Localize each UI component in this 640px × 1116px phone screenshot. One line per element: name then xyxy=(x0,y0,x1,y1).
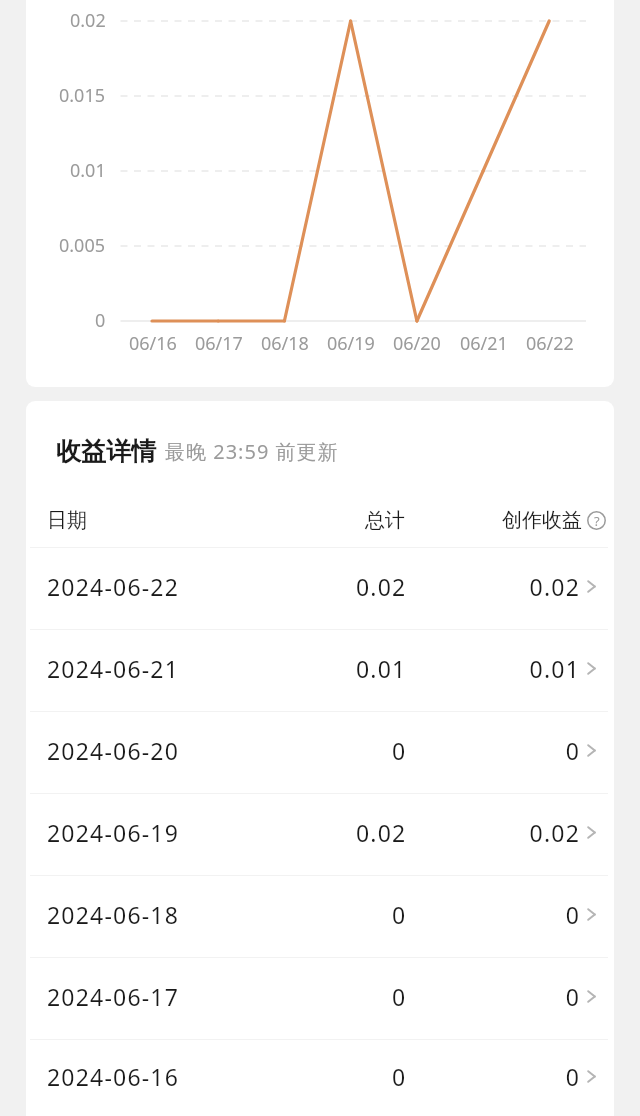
staticText: 06/18 xyxy=(261,331,309,356)
staticText: 0 xyxy=(95,308,106,333)
staticText: 0.005 xyxy=(59,233,106,258)
staticText: 最晚 23:59 前更新 xyxy=(165,438,339,465)
button[interactable]: 2024-06-16 xyxy=(26,1040,614,1116)
staticText: 0 xyxy=(565,899,580,930)
staticText: 0.01 xyxy=(529,653,580,684)
staticText: 06/16 xyxy=(129,331,177,356)
button[interactable]: 2024-06-21 xyxy=(26,630,614,711)
button[interactable]: 2024-06-20 xyxy=(26,712,614,793)
staticText: 0.02 xyxy=(529,817,580,848)
staticText: 创作收益 xyxy=(502,508,582,533)
staticText: 0.02 xyxy=(356,817,407,848)
staticText: ? xyxy=(594,512,600,530)
staticText: 0 xyxy=(565,981,580,1012)
other: 查看详情 xyxy=(587,580,596,593)
staticText: 0.01 xyxy=(70,158,106,183)
staticText: 06/17 xyxy=(195,331,243,356)
staticText: 0 xyxy=(565,735,580,766)
button[interactable]: 2024-06-22 xyxy=(26,548,614,629)
staticText: 2024-06-21 xyxy=(47,653,180,684)
button[interactable]: 创作收益 说明 xyxy=(502,495,606,545)
staticText: 06/19 xyxy=(327,331,375,356)
other: 查看详情 xyxy=(587,908,596,921)
staticText: 0 xyxy=(392,899,407,930)
staticText: 0.02 xyxy=(70,8,106,33)
other: 查看详情 xyxy=(587,1070,596,1083)
staticText: 2024-06-20 xyxy=(47,735,180,766)
staticText: 0.015 xyxy=(59,83,106,108)
button[interactable]: 2024-06-19 xyxy=(26,794,614,875)
other: 查看详情 xyxy=(587,662,596,675)
staticText: 06/22 xyxy=(526,331,574,356)
staticText: 0 xyxy=(392,1061,407,1092)
other: 查看详情 xyxy=(587,826,596,839)
other: 查看详情 xyxy=(587,744,596,757)
button[interactable]: 2024-06-18 xyxy=(26,876,614,957)
button[interactable]: 2024-06-17 xyxy=(26,958,614,1039)
staticText: 0 xyxy=(392,981,407,1012)
staticText: 06/21 xyxy=(460,331,508,356)
staticText: 日期 xyxy=(47,508,87,533)
staticText: 2024-06-19 xyxy=(47,817,180,848)
staticText: 2024-06-17 xyxy=(47,981,180,1012)
staticText: 06/20 xyxy=(393,331,441,356)
staticText: 0 xyxy=(565,1061,580,1092)
staticText: 收益详情 xyxy=(56,436,156,467)
other: 查看详情 xyxy=(587,990,596,1003)
staticText: 0.01 xyxy=(356,653,407,684)
staticText: 0 xyxy=(392,735,407,766)
staticText: 0.02 xyxy=(529,571,580,602)
staticText: 0.02 xyxy=(356,571,407,602)
staticText: 2024-06-16 xyxy=(47,1061,180,1092)
staticText: 总计 xyxy=(365,508,405,533)
staticText: 2024-06-22 xyxy=(47,571,180,602)
staticText: 2024-06-18 xyxy=(47,899,180,930)
